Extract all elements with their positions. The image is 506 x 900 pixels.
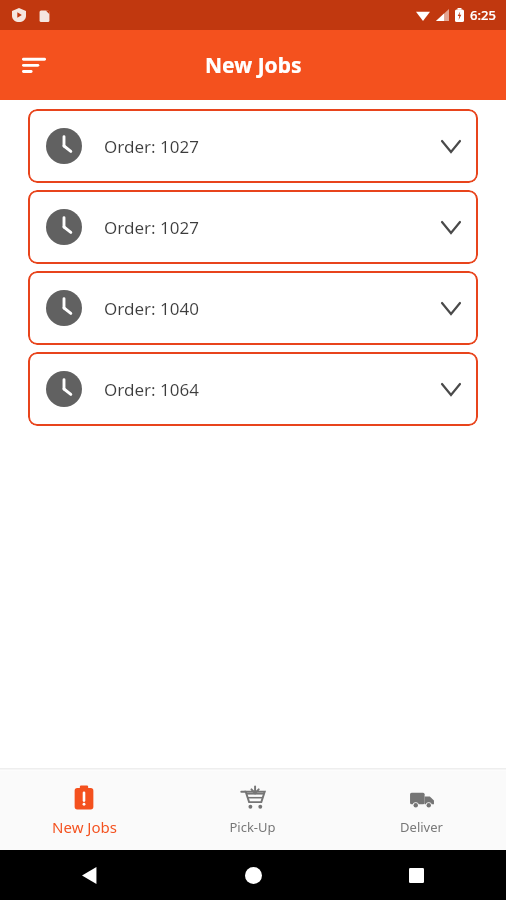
button[interactable]: Order: 1040 [28,271,478,345]
staticText: Order: 1040 [104,297,199,320]
button[interactable]: Order: 1027 [28,109,478,183]
staticText: Order: 1027 [104,216,199,239]
staticText: Order: 1064 [104,378,199,401]
staticText: 6:25 [470,6,496,24]
button[interactable]: Pick-Up [168,771,337,850]
button[interactable]: Deliver [337,771,506,850]
button[interactable]: Menu [10,41,58,89]
staticText: New Jobs [205,51,302,80]
staticText: Deliver [400,818,443,836]
button[interactable]: New Jobs [0,771,168,850]
button[interactable]: Back [70,855,110,895]
button[interactable]: Order: 1064 [28,352,478,426]
button[interactable]: Order: 1027 [28,190,478,264]
staticText: New Jobs [52,817,117,837]
button[interactable]: Home [233,855,273,895]
button[interactable]: Recents [396,855,436,895]
staticText: Order: 1027 [104,135,199,158]
staticText: Pick-Up [229,818,276,836]
